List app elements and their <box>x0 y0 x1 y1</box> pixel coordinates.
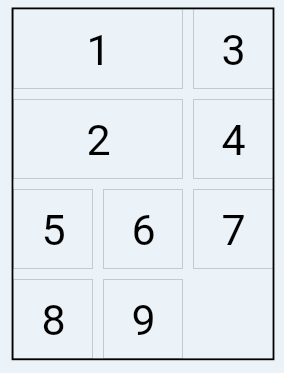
button[interactable]: Tile 8 <box>13 279 93 359</box>
button[interactable]: Tile 9 <box>103 279 183 359</box>
staticText: 1 <box>86 25 111 75</box>
staticText: 3 <box>221 25 246 75</box>
button[interactable]: Tile 5 <box>13 189 93 269</box>
button[interactable]: Tile 3 <box>193 8 274 89</box>
button[interactable]: Tile 7 <box>193 189 274 269</box>
staticText: 7 <box>221 205 246 255</box>
button[interactable]: Tile 1 <box>13 8 183 89</box>
staticText: 4 <box>221 115 246 165</box>
button[interactable]: Tile 2 <box>13 99 183 179</box>
staticText: 8 <box>41 295 66 345</box>
button[interactable]: Tile 6 <box>103 189 183 269</box>
button[interactable]: Tile 4 <box>193 99 274 179</box>
staticText: 5 <box>41 205 66 255</box>
staticText: 6 <box>131 205 156 255</box>
staticText: 2 <box>86 115 111 165</box>
staticText: 9 <box>131 295 156 345</box>
